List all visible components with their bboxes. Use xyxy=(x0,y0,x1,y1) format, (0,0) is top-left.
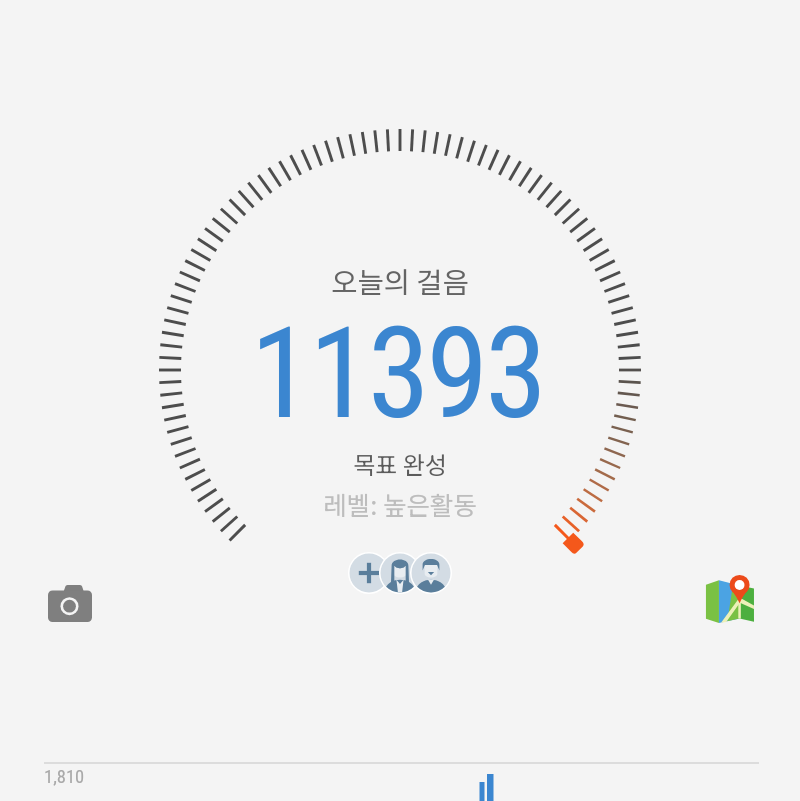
staticText: 1,810 xyxy=(44,766,85,788)
staticText: 11393 xyxy=(250,300,544,448)
button[interactable]: Hourly steps chart xyxy=(0,760,800,801)
button[interactable]: Add friend xyxy=(348,552,390,594)
staticText: 목표 완성 xyxy=(353,446,447,481)
staticText: 레벨: 높은활동 xyxy=(323,485,477,522)
button[interactable]: Friend xyxy=(410,552,452,594)
button[interactable]: Camera xyxy=(44,580,96,632)
button[interactable]: Friend xyxy=(379,552,421,594)
staticText: 오늘의 걸음 xyxy=(331,260,469,301)
button[interactable]: Map xyxy=(698,571,758,631)
